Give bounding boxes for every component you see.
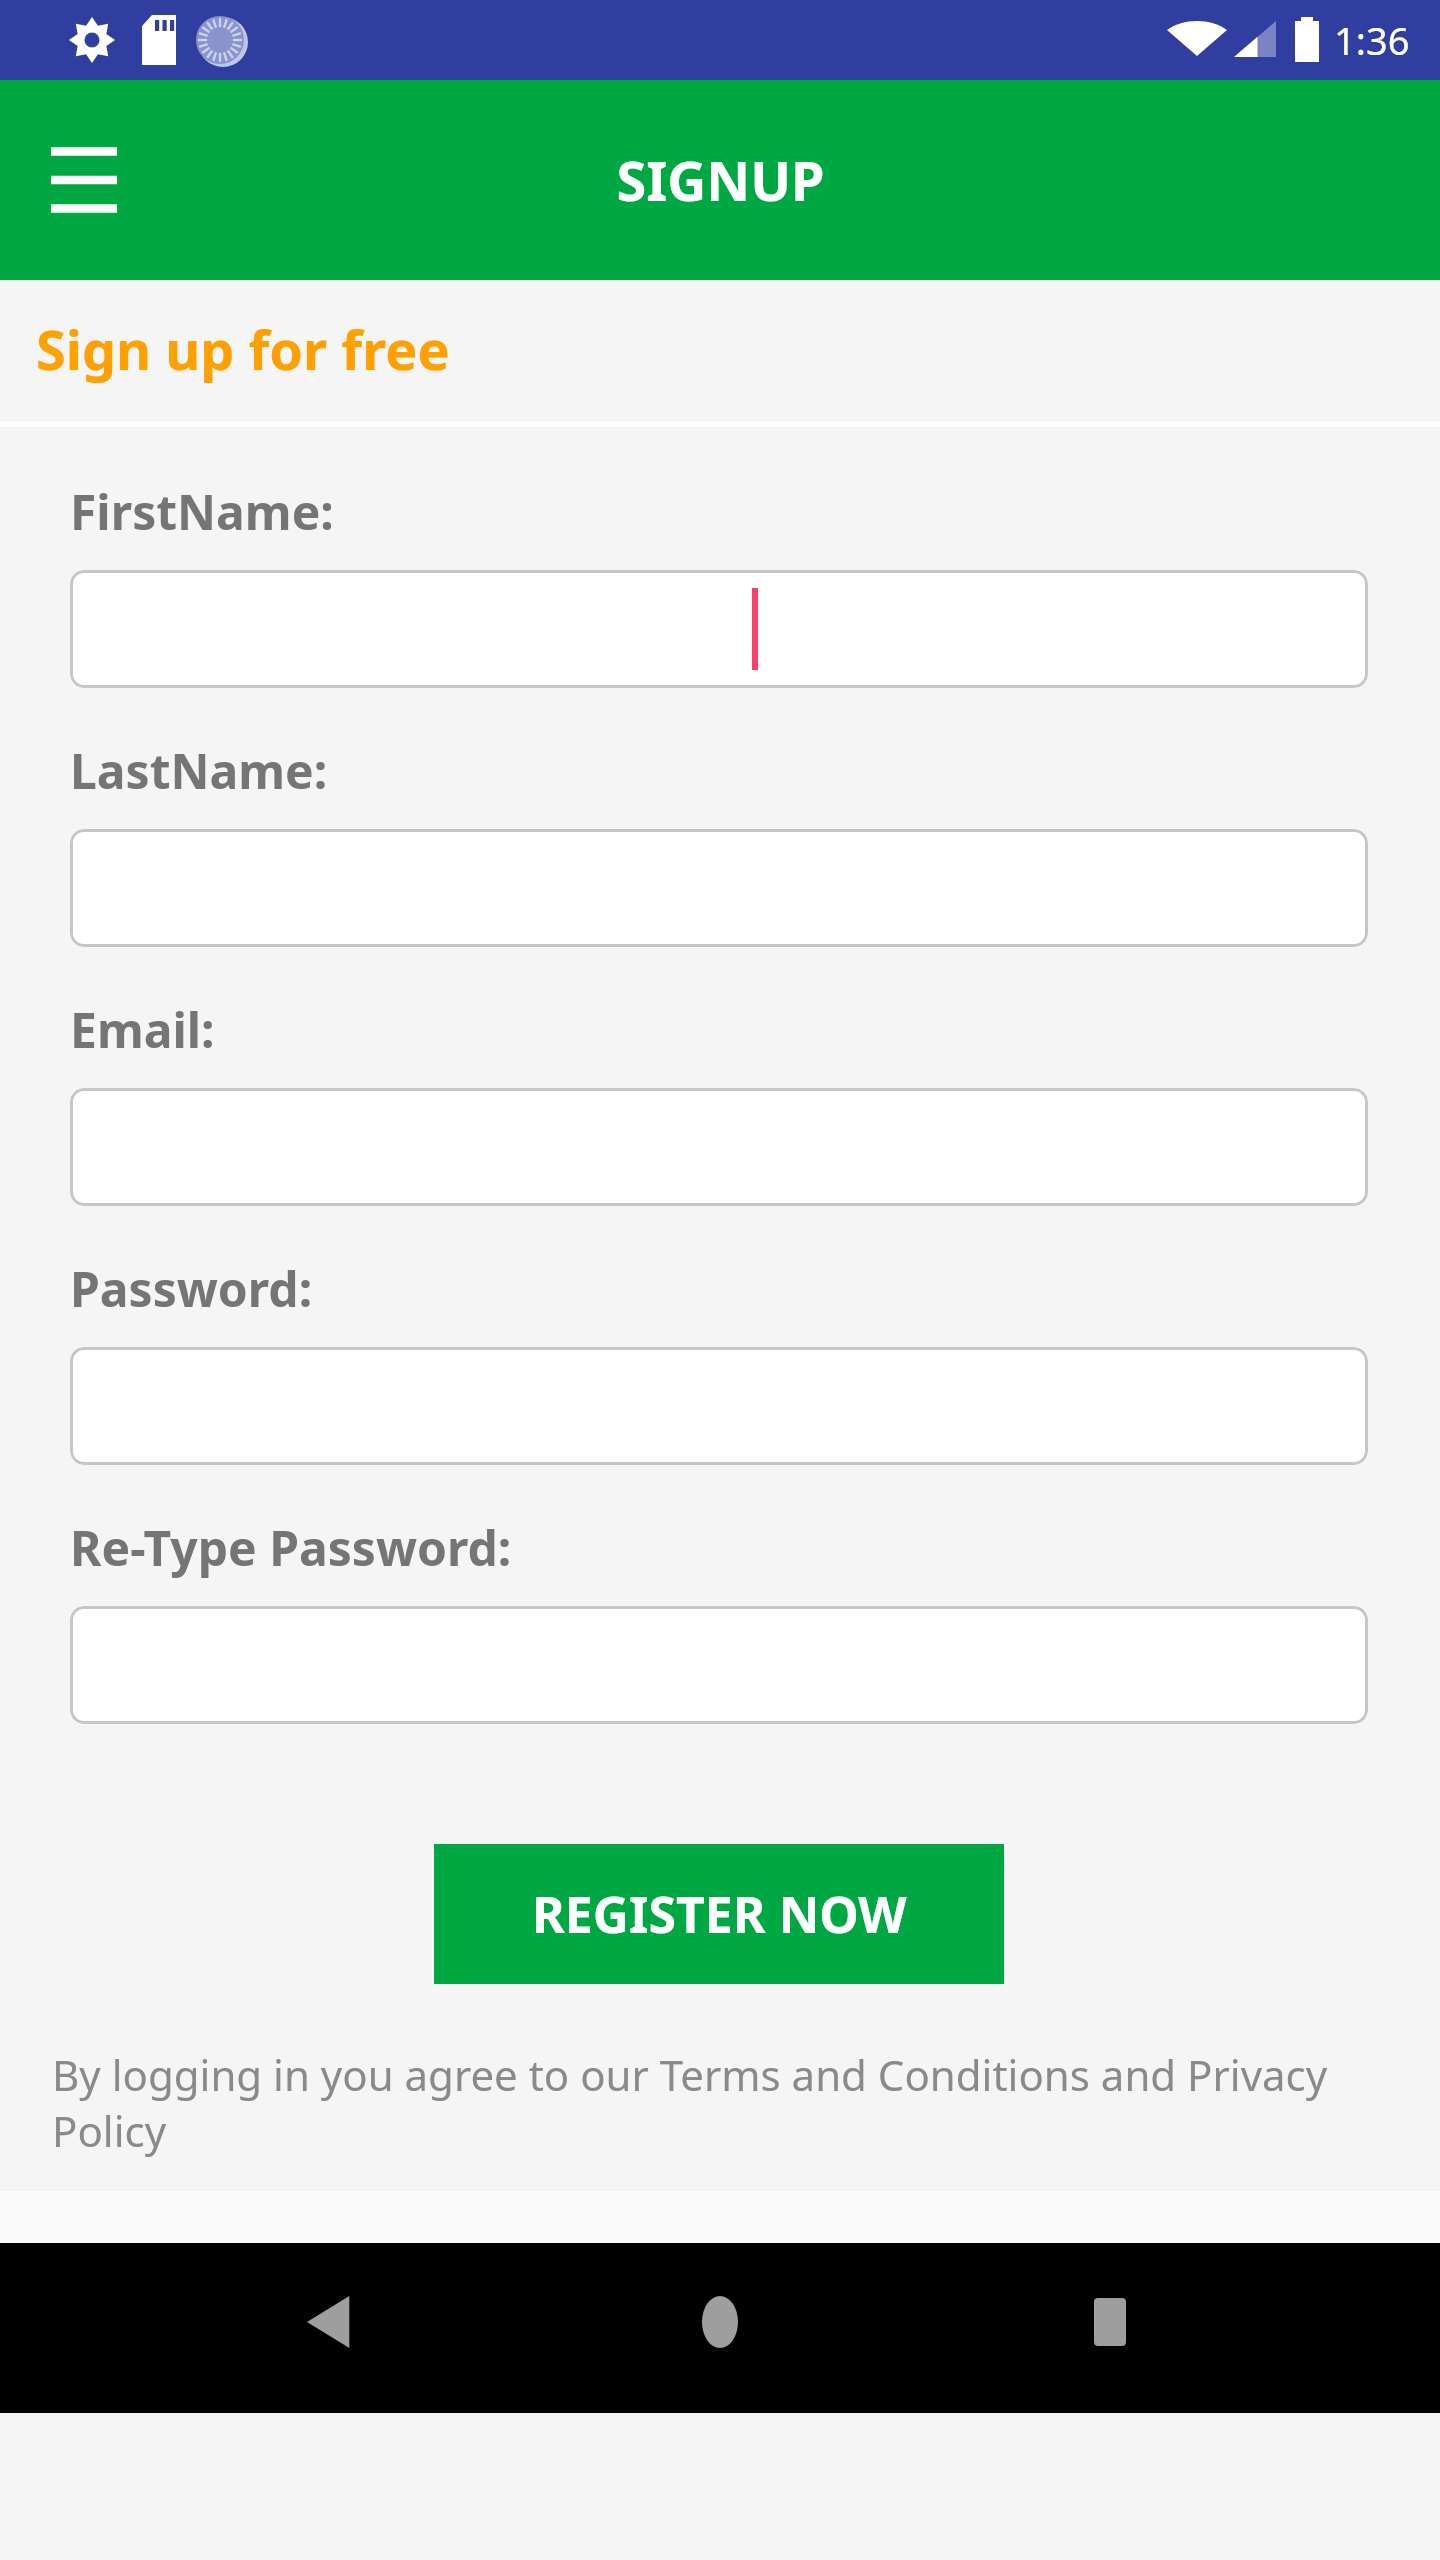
staticText: REGISTER NOW	[532, 1880, 907, 1948]
button[interactable]	[70, 570, 1368, 688]
button[interactable]: Recent apps	[1050, 2277, 1170, 2367]
button[interactable]	[70, 1088, 1368, 1206]
button[interactable]	[70, 1347, 1368, 1465]
staticText: Re-Type Password:	[70, 1515, 512, 1580]
staticText: FirstName:	[70, 479, 334, 544]
button[interactable]: Open navigation menu	[30, 126, 138, 234]
staticText: 1:36	[1334, 14, 1410, 66]
button[interactable]: By logging in you agree to our Terms and…	[52, 2046, 1348, 2159]
button[interactable]: REGISTER NOW	[434, 1844, 1004, 1984]
button[interactable]	[70, 1606, 1368, 1724]
staticText: Sign up for free	[36, 312, 450, 386]
button[interactable]: Home	[660, 2277, 780, 2367]
button[interactable]	[70, 829, 1368, 947]
staticText: Email:	[70, 997, 215, 1062]
button[interactable]: Back	[270, 2277, 390, 2367]
staticText: LastName:	[70, 738, 328, 803]
staticText: SIGNUP	[616, 143, 825, 217]
staticText: Password:	[70, 1256, 313, 1321]
